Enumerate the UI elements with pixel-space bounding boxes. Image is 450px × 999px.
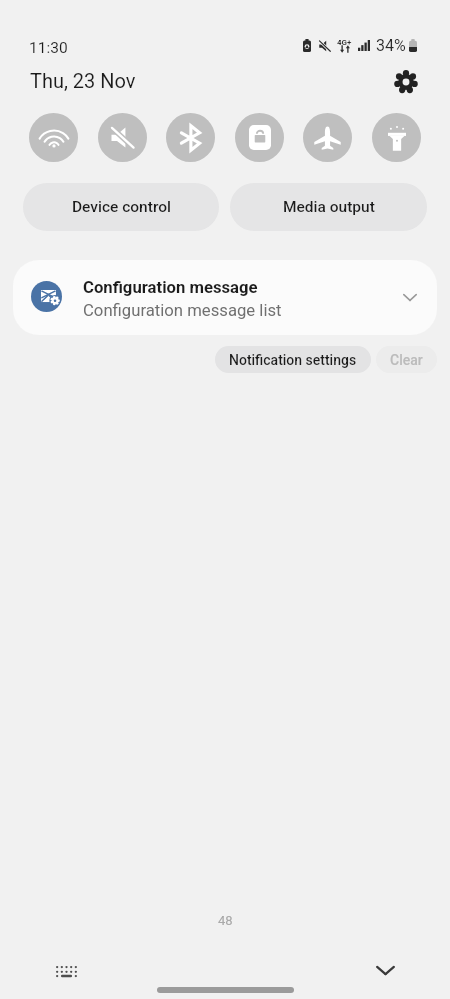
- staticText: Device control: [72, 198, 171, 216]
- staticText: Notification settings: [229, 352, 357, 368]
- button[interactable]: Screen lock: [235, 113, 284, 162]
- button[interactable]: Bluetooth: [166, 113, 215, 162]
- staticText: Configuration message: [83, 278, 258, 298]
- button[interactable]: Notification settings: [215, 346, 371, 373]
- button[interactable]: Expand notification: [398, 285, 422, 309]
- staticText: 48: [218, 913, 233, 928]
- staticText: 4G+: [337, 38, 352, 47]
- button[interactable]: Configuration message: [13, 260, 437, 335]
- staticText: 34%: [376, 36, 406, 55]
- button[interactable]: Collapse: [370, 955, 400, 985]
- staticText: Thu, 23 Nov: [30, 69, 136, 92]
- button[interactable]: Clear: [376, 346, 437, 373]
- button[interactable]: Flashlight: [372, 113, 421, 162]
- button[interactable]: Wi-Fi: [29, 113, 78, 162]
- button[interactable]: Media output: [230, 183, 427, 231]
- button[interactable]: Keyboard: [51, 956, 81, 986]
- button[interactable]: Sound off: [98, 113, 147, 162]
- button[interactable]: Device control: [23, 183, 219, 231]
- staticText: Media output: [283, 198, 375, 216]
- staticText: 11:30: [29, 39, 68, 57]
- staticText: Clear: [390, 352, 423, 368]
- staticText: Configuration message list: [83, 301, 282, 321]
- button[interactable]: Settings: [393, 69, 419, 95]
- button[interactable]: Airplane mode: [303, 113, 352, 162]
